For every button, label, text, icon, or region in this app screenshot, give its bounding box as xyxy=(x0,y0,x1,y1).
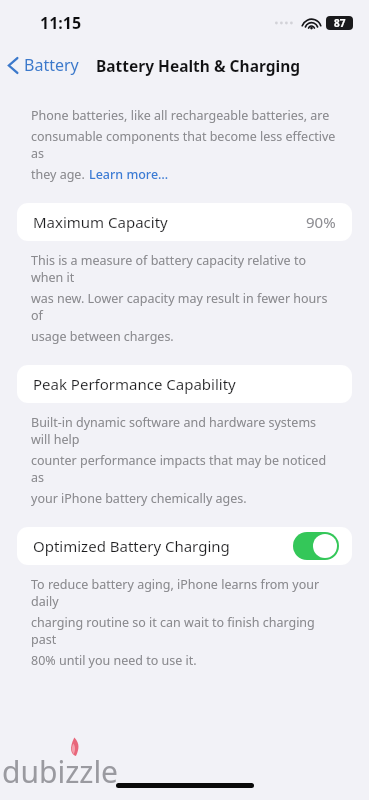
staticText: Built-in dynamic software and hardware s… xyxy=(31,414,338,448)
staticText: 11:15 xyxy=(40,12,82,34)
staticText: charging routine so it can wait to finis… xyxy=(31,614,338,648)
button[interactable]: Peak Performance Capability xyxy=(17,365,352,403)
button[interactable]: Optimized Battery Charging xyxy=(17,527,352,565)
button[interactable]: Maximum Capacity xyxy=(17,203,352,241)
staticText: counter performance impacts that may be … xyxy=(31,452,338,486)
staticText: Maximum Capacity xyxy=(33,212,168,232)
staticText: consumable components that become less e… xyxy=(31,128,338,162)
staticText: 90% xyxy=(306,212,336,232)
button[interactable]: Optimized Battery Charging toggle, on xyxy=(293,532,339,560)
staticText: usage between charges. xyxy=(31,328,174,345)
staticText: Peak Performance Capability xyxy=(33,374,236,394)
button[interactable]: Battery xyxy=(0,50,87,80)
staticText: Battery xyxy=(24,54,79,76)
staticText: Battery Health & Charging xyxy=(96,55,300,76)
staticText: Phone batteries, like all rechargeable b… xyxy=(31,107,330,124)
staticText: 87 xyxy=(334,16,346,30)
staticText: was new. Lower capacity may result in fe… xyxy=(31,290,338,324)
staticText: 80% until you need to use it. xyxy=(31,652,197,669)
staticText: your iPhone battery chemically ages. xyxy=(31,490,247,507)
staticText: dubizzle xyxy=(2,751,119,792)
staticText: Optimized Battery Charging xyxy=(33,536,230,556)
staticText: To reduce battery aging, iPhone learns f… xyxy=(31,576,338,610)
staticText: This is a measure of battery capacity re… xyxy=(31,252,338,286)
staticText: they age. xyxy=(31,166,89,183)
button[interactable]: Learn more… xyxy=(89,166,169,183)
